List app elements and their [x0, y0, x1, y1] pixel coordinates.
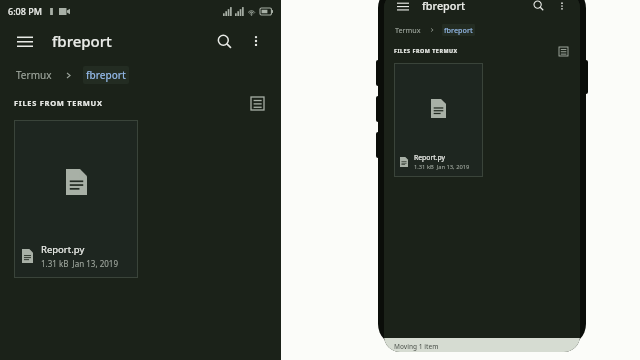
staticText: Report.py	[41, 243, 85, 256]
button[interactable]: More options	[552, 0, 571, 15]
button[interactable]: Termux	[394, 24, 422, 36]
staticText: FILES FROM TERMUX	[394, 47, 458, 54]
staticText: fbreport	[422, 0, 466, 13]
staticText: Termux	[16, 68, 52, 82]
button[interactable]: More options	[243, 28, 269, 54]
button[interactable]: fbreport	[442, 24, 475, 36]
button[interactable]: Toggle view	[247, 93, 267, 113]
staticText: Report.py	[414, 153, 446, 162]
staticText: 6:08 PM	[8, 5, 42, 17]
staticText: Termux	[395, 25, 421, 35]
staticText: Moving 1 item	[394, 342, 439, 351]
button[interactable]: Report.py	[394, 63, 483, 177]
button[interactable]: fbreport	[83, 66, 129, 84]
staticText: fbreport	[52, 31, 112, 51]
button[interactable]: Report.py	[14, 120, 138, 278]
button[interactable]: Termux	[14, 66, 54, 84]
staticText: 1.31 kB Jan 13, 2019	[414, 163, 470, 171]
button[interactable]: Search	[529, 0, 548, 15]
button[interactable]: Search	[211, 28, 237, 54]
staticText: 1.31 kB Jan 13, 2019	[41, 258, 118, 269]
button[interactable]: Menu	[393, 0, 412, 15]
button[interactable]: Toggle view	[556, 44, 570, 58]
staticText: fbreport	[444, 25, 473, 35]
staticText: fbreport	[86, 68, 126, 82]
staticText: FILES FROM TERMUX	[14, 98, 103, 108]
button[interactable]: Menu	[12, 28, 38, 54]
